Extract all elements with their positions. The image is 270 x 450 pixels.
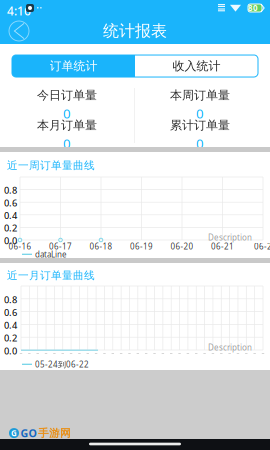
button[interactable]: 订单统计	[12, 55, 135, 77]
staticText: 近一周订单量曲线	[7, 159, 95, 172]
staticText: 06-2	[254, 241, 270, 252]
staticText: 0.4	[4, 319, 17, 331]
staticText: 80	[248, 3, 258, 13]
staticText: 06-21	[211, 241, 234, 252]
staticText: 0.6	[4, 197, 17, 209]
staticText: 0	[196, 134, 204, 152]
staticText: 订单统计	[49, 59, 97, 73]
staticText: 今日订单量	[37, 88, 97, 102]
staticText: 近一月订单量曲线	[7, 269, 95, 282]
staticText: 05-24到06-22	[35, 359, 89, 370]
staticText: 0.8	[4, 184, 17, 196]
staticText: GO	[20, 426, 36, 440]
button[interactable]: 收入统计	[135, 55, 258, 77]
staticText: 06-16	[8, 241, 31, 252]
staticText: 0.2	[4, 332, 17, 344]
staticText: 06-19	[130, 241, 153, 252]
staticText: Description	[208, 342, 252, 353]
staticText: Description	[208, 232, 252, 243]
staticText: 收入统计	[172, 59, 220, 73]
staticText: 手游网	[38, 426, 71, 440]
staticText: 0.4	[4, 209, 17, 222]
staticText: 06-20	[170, 241, 193, 252]
staticText: 0.2	[4, 222, 17, 234]
staticText: G	[11, 428, 17, 438]
staticText: 累计订单量	[170, 118, 230, 132]
staticText: 0.0	[4, 234, 17, 247]
staticText: 0.8	[4, 293, 17, 306]
staticText: 06-18	[89, 241, 112, 252]
staticText: 统计报表	[103, 21, 167, 41]
staticText: 0	[196, 104, 204, 122]
staticText: 0	[63, 134, 71, 152]
staticText: 4:16	[7, 3, 31, 19]
staticText: 0.6	[4, 306, 17, 319]
button[interactable]: Back	[0, 18, 38, 44]
staticText: 0	[63, 104, 71, 122]
staticText: 本月订单量	[37, 118, 97, 132]
staticText: 0.0	[4, 345, 17, 357]
staticText: dataLine	[35, 249, 67, 260]
staticText: 06-17	[49, 241, 72, 252]
staticText: 本周订单量	[170, 88, 230, 102]
